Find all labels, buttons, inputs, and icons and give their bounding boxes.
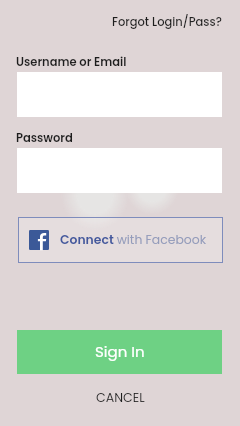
staticText: Sign In (95, 341, 145, 362)
staticText: Forgot Login/Pass? (112, 14, 222, 30)
staticText: CANCEL (96, 389, 145, 407)
staticText: Password (16, 130, 73, 146)
button[interactable]: CANCEL (0, 386, 240, 409)
button[interactable]: Forgot Login/Pass? (96, 11, 222, 33)
staticText: Connect with Facebook (60, 231, 207, 248)
button[interactable]: Sign In (17, 330, 222, 374)
staticText: Username or Email (16, 54, 127, 70)
button[interactable]: Connect with Facebook (18, 217, 223, 263)
